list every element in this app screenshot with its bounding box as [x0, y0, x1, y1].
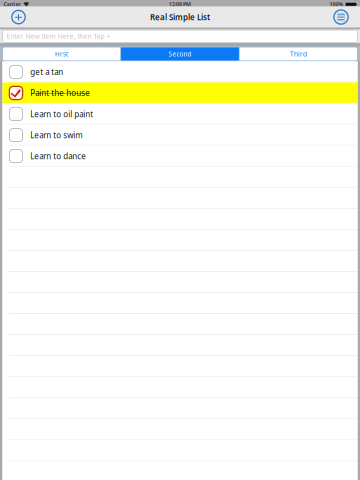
staticText: First — [55, 49, 68, 58]
staticText: Carrier — [3, 1, 20, 8]
button[interactable]: Show lists — [330, 6, 352, 28]
button[interactable]: Add item — [7, 6, 29, 28]
staticText: 100% — [329, 1, 343, 8]
staticText: Learn to swim — [30, 130, 82, 140]
staticText: Paint the house — [30, 88, 90, 98]
button[interactable]: Second — [121, 47, 239, 61]
button[interactable]: Enter New Item Here, then Tap + — [0, 30, 360, 42]
button[interactable]: Learn to oil paint — [2, 103, 357, 125]
staticText: Learn to dance — [30, 151, 86, 161]
staticText: Enter New Item Here, then Tap + — [6, 32, 110, 41]
button[interactable]: Learn to swim — [2, 125, 357, 146]
button[interactable]: First — [2, 47, 120, 61]
staticText: Third — [290, 49, 307, 58]
staticText: Second — [168, 49, 191, 58]
button[interactable]: get a tan — [2, 61, 357, 82]
staticText: 12:09 PM — [169, 1, 191, 8]
staticText: Real Simple List — [150, 12, 210, 22]
staticText: Learn to oil paint — [30, 109, 93, 119]
button[interactable]: Learn to dance — [2, 146, 357, 167]
staticText: get a tan — [30, 67, 63, 77]
button[interactable]: Third — [240, 47, 357, 61]
button[interactable]: Paint the house — [2, 82, 357, 104]
